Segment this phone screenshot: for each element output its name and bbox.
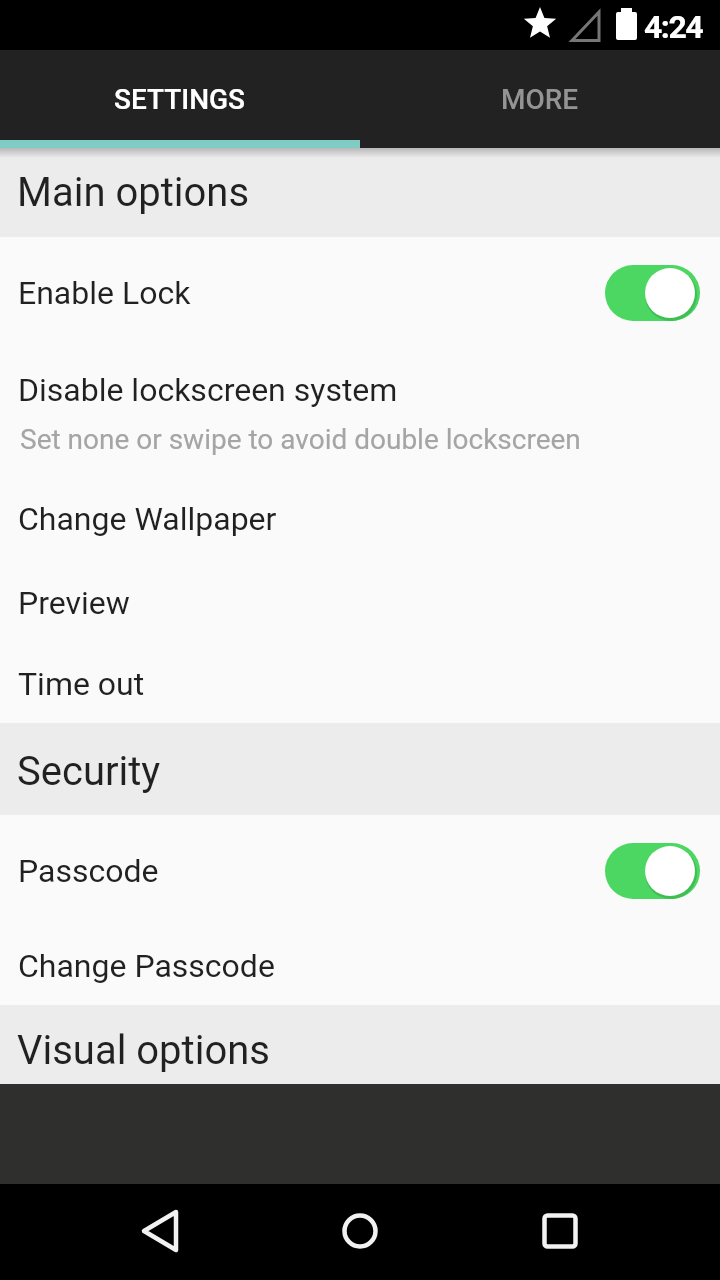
button[interactable]: MORE xyxy=(360,50,720,148)
button[interactable]: Passcode xyxy=(0,815,720,927)
button[interactable] xyxy=(312,1184,408,1280)
staticText: Set none or swipe to avoid double locksc… xyxy=(20,423,581,456)
button[interactable]: Change Passcode xyxy=(0,927,720,1005)
staticText: Security xyxy=(17,748,161,795)
button[interactable] xyxy=(112,1184,208,1280)
button[interactable]: Enable Lock xyxy=(0,237,720,349)
staticText: Change Passcode xyxy=(18,947,275,985)
staticText: Main options xyxy=(17,169,250,216)
staticText: Change Wallpaper xyxy=(18,500,277,538)
staticText: 4:24 xyxy=(644,8,703,46)
button[interactable]: Time out xyxy=(0,645,720,723)
staticText: Time out xyxy=(18,665,145,703)
staticText: Preview xyxy=(18,584,130,622)
staticText: MORE xyxy=(501,83,579,116)
button[interactable]: Disable lockscreen system xyxy=(0,349,720,477)
button[interactable]: Change Wallpaper xyxy=(0,477,720,561)
staticText: Visual options xyxy=(17,1027,270,1074)
button[interactable] xyxy=(512,1184,608,1280)
staticText: Passcode xyxy=(18,852,159,890)
staticText: Enable Lock xyxy=(18,274,191,312)
button[interactable]: SETTINGS xyxy=(0,50,360,148)
staticText: SETTINGS xyxy=(114,83,246,116)
staticText: Disable lockscreen system xyxy=(18,371,398,409)
button[interactable]: Preview xyxy=(0,561,720,645)
